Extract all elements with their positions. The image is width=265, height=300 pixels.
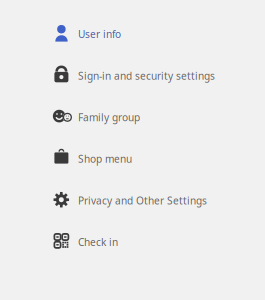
button[interactable]: Privacy and Other Settings — [0, 178, 265, 220]
button[interactable]: Check in — [0, 220, 265, 262]
staticText: User info — [78, 27, 121, 41]
staticText: Family group — [78, 110, 140, 124]
button[interactable]: User info — [0, 12, 265, 54]
staticText: Shop menu — [78, 152, 132, 166]
button[interactable]: Family group — [0, 95, 265, 137]
staticText: Check in — [78, 235, 118, 249]
button[interactable]: Sign-in and security settings — [0, 54, 265, 95]
staticText: Sign-in and security settings — [78, 69, 215, 83]
button[interactable]: Shop menu — [0, 137, 265, 178]
staticText: Privacy and Other Settings — [78, 194, 207, 207]
